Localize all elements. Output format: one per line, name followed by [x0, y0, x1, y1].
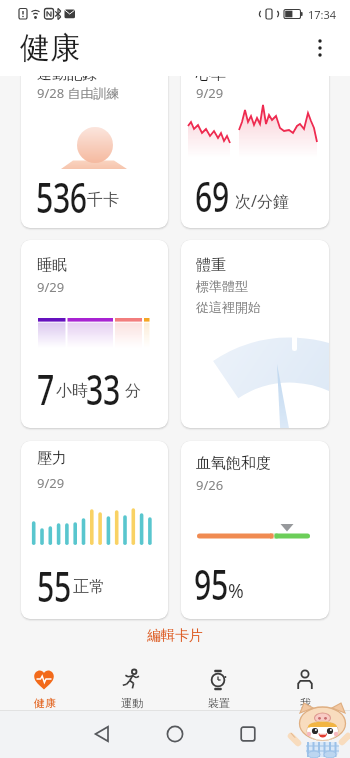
staticText: 我: [300, 696, 311, 710]
staticText: 69: [195, 167, 230, 224]
button[interactable]: 編輯卡片: [147, 627, 203, 645]
staticText: 9/29: [196, 84, 224, 102]
staticText: 標準體型: [196, 278, 248, 294]
button[interactable]: 血氧飽和度: [181, 441, 329, 619]
staticText: 壓力: [37, 449, 67, 468]
staticText: 體重: [196, 256, 226, 275]
staticText: 裝置: [208, 696, 230, 710]
staticText: 9/28 自由訓練: [37, 84, 120, 102]
button[interactable]: 體重: [181, 240, 329, 428]
button[interactable]: 裝置: [175, 652, 262, 710]
staticText: 9/29: [37, 474, 65, 492]
staticText: %: [228, 578, 244, 604]
button[interactable]: 運動記錄: [21, 76, 168, 228]
button[interactable]: 健康: [1, 652, 88, 710]
staticText: 次/分鐘: [235, 190, 289, 212]
button[interactable]: 壓力: [21, 441, 168, 619]
staticText: 7: [37, 360, 54, 417]
button[interactable]: [78, 710, 126, 758]
button[interactable]: 睡眠: [21, 240, 168, 428]
staticText: 33: [86, 360, 121, 417]
staticText: 小時: [56, 381, 88, 401]
staticText: 正常: [73, 577, 105, 597]
staticText: 血氧飽和度: [196, 454, 271, 473]
staticText: 55: [37, 557, 72, 614]
button[interactable]: [224, 710, 272, 758]
button[interactable]: 運動: [88, 652, 175, 710]
staticText: 95: [194, 555, 229, 612]
button[interactable]: 心率: [181, 76, 329, 228]
staticText: 9/26: [196, 476, 224, 494]
staticText: 運動: [121, 696, 143, 710]
staticText: 分: [125, 381, 141, 401]
staticText: 睡眠: [37, 256, 67, 275]
staticText: 健康: [20, 29, 80, 67]
staticText: 編輯卡片: [147, 627, 203, 645]
staticText: 健康: [34, 696, 56, 710]
staticText: 運動記錄: [37, 76, 97, 84]
staticText: 千卡: [87, 190, 119, 210]
staticText: 9/29: [37, 278, 65, 296]
button[interactable]: [151, 710, 199, 758]
staticText: 17:34: [308, 7, 337, 22]
staticText: 心率: [196, 76, 226, 84]
staticText: 從這裡開始: [196, 299, 261, 315]
button[interactable]: 我: [262, 652, 349, 710]
staticText: 536: [36, 168, 87, 225]
button[interactable]: [306, 34, 334, 62]
